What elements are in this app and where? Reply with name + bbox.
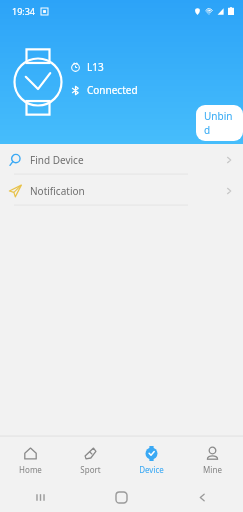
button[interactable]: Unbind bbox=[196, 105, 243, 141]
staticText: Connected bbox=[87, 83, 138, 97]
button[interactable]: Home bbox=[0, 437, 60, 483]
staticText: 19:34 bbox=[12, 5, 36, 17]
button[interactable]: Mine bbox=[182, 437, 243, 483]
staticText: Device bbox=[139, 464, 164, 475]
button[interactable]: Find Device bbox=[0, 144, 243, 175]
staticText: Mine bbox=[203, 464, 222, 475]
staticText: Notification bbox=[30, 184, 85, 198]
staticText: Home bbox=[19, 464, 42, 475]
staticText: Sport bbox=[80, 464, 101, 475]
other: Home bbox=[116, 492, 127, 503]
other: Recents bbox=[35, 492, 46, 503]
button[interactable]: Notification bbox=[0, 175, 243, 206]
staticText: Find Device bbox=[30, 153, 84, 167]
button[interactable]: Device bbox=[121, 437, 182, 483]
staticText: L13 bbox=[87, 60, 104, 74]
other: Back bbox=[197, 492, 208, 503]
staticText: Unbind bbox=[204, 109, 235, 137]
button[interactable]: Sport bbox=[60, 437, 121, 483]
